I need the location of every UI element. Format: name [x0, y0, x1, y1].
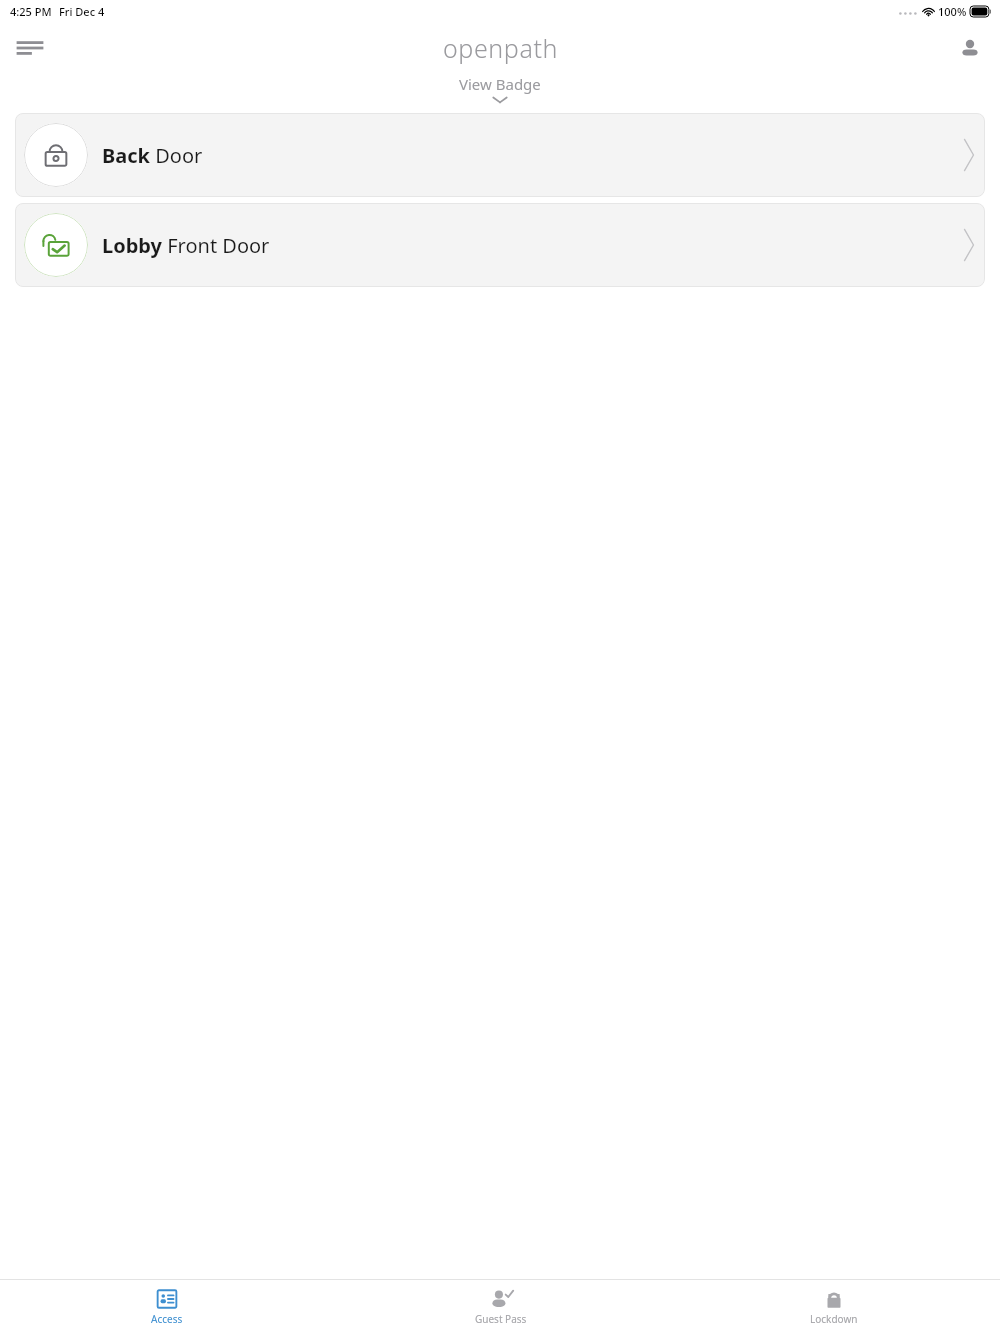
button[interactable]: Lockdown: [667, 1280, 1000, 1334]
staticText: View Badge: [459, 74, 541, 94]
staticText: Back Door: [102, 142, 203, 169]
button[interactable]: Lobby Front Door: [15, 203, 985, 287]
button[interactable]: Guest Pass: [334, 1280, 667, 1334]
staticText: Lobby Front Door: [102, 232, 270, 259]
staticText: 4:25 PM: [10, 4, 52, 19]
staticText: Lockdown: [810, 1312, 858, 1326]
staticText: Fri Dec 4: [59, 4, 105, 19]
staticText: Access: [151, 1312, 183, 1326]
button[interactable]: Access: [0, 1280, 334, 1334]
staticText: Guest Pass: [475, 1312, 527, 1326]
button[interactable]: View Badge: [0, 74, 1000, 104]
button[interactable]: Profile: [948, 26, 992, 70]
button[interactable]: Menu: [8, 26, 52, 70]
staticText: openpath: [443, 31, 558, 65]
button[interactable]: Back Door: [15, 113, 985, 197]
staticText: 100%: [938, 4, 967, 19]
